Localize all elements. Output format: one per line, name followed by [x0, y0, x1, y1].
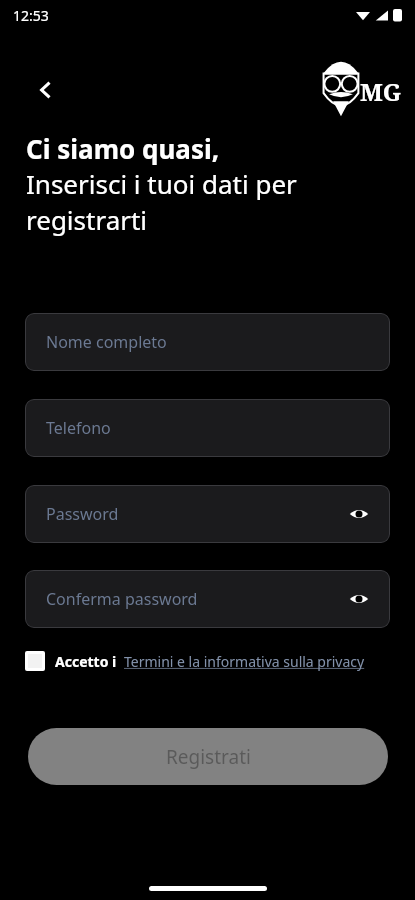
- staticText: Registrati: [166, 744, 251, 770]
- button[interactable]: Telefono: [25, 399, 390, 457]
- staticText: Telefono: [46, 417, 111, 439]
- staticText: Conferma password: [46, 588, 198, 610]
- staticText: 12:53: [13, 6, 49, 25]
- staticText: Inserisci i tuoi dati per registrarti: [26, 166, 297, 238]
- staticText: Ci siamo quasi,: [26, 131, 220, 166]
- staticText: Accetto i: [55, 652, 117, 671]
- button[interactable]: Back: [24, 68, 68, 112]
- button[interactable]: Accetto i: [25, 646, 365, 676]
- button[interactable]: Termini e la informativa sulla privacy: [124, 652, 365, 671]
- button[interactable]: Show password: [342, 497, 376, 531]
- button[interactable]: Show password: [342, 582, 376, 616]
- button[interactable]: Nome completo: [25, 313, 390, 371]
- button[interactable]: Registrati: [28, 728, 388, 785]
- button[interactable]: Conferma password: [25, 570, 390, 628]
- staticText: Nome completo: [46, 331, 167, 353]
- staticText: MG: [360, 75, 402, 108]
- button[interactable]: Password: [25, 485, 390, 543]
- staticText: Password: [46, 503, 119, 525]
- staticText: Termini e la informativa sulla privacy: [124, 652, 365, 671]
